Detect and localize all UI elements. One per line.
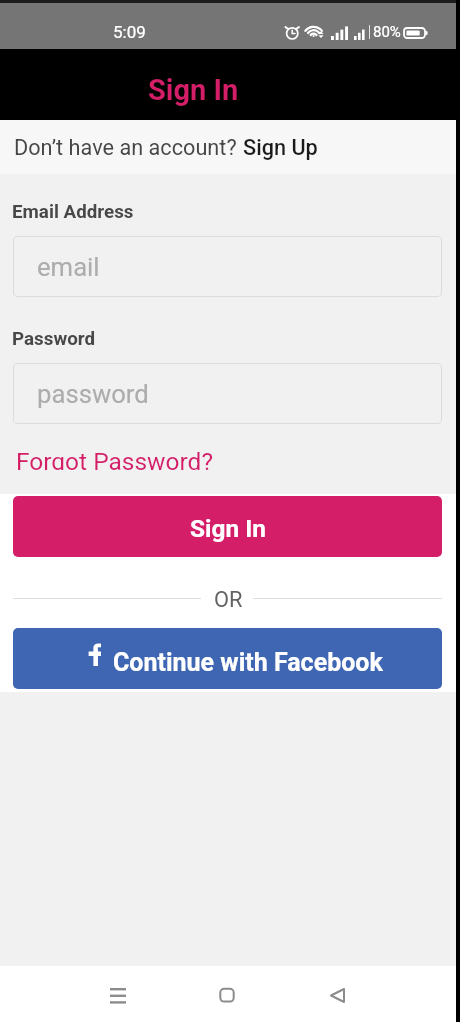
button[interactable]: Sign Up	[243, 135, 318, 160]
staticText: OR	[214, 587, 243, 613]
button[interactable]: Back	[313, 971, 361, 1019]
staticText: Sign In	[148, 73, 239, 107]
button[interactable]: Menu	[94, 971, 142, 1019]
staticText: 5:09	[113, 22, 146, 42]
staticText: Sign In	[190, 514, 266, 543]
button[interactable]: Sign In	[13, 496, 442, 557]
staticText: Sign Up	[243, 135, 318, 160]
staticText: password	[37, 379, 149, 409]
staticText: Continue with Facebook	[113, 648, 383, 677]
staticText: Password	[12, 328, 96, 350]
staticText: Forgot Password?	[16, 447, 213, 470]
button[interactable]: password	[13, 363, 442, 424]
staticText: email	[37, 252, 100, 282]
staticText: Email Address	[12, 201, 134, 223]
button[interactable]: email	[13, 236, 442, 297]
button[interactable]: Continue with Facebook	[13, 628, 442, 689]
staticText: 80%	[373, 23, 401, 41]
staticText: Don’t have an account?	[14, 135, 243, 160]
button[interactable]: Forgot Password?	[16, 447, 213, 470]
button[interactable]: Home	[203, 971, 251, 1019]
